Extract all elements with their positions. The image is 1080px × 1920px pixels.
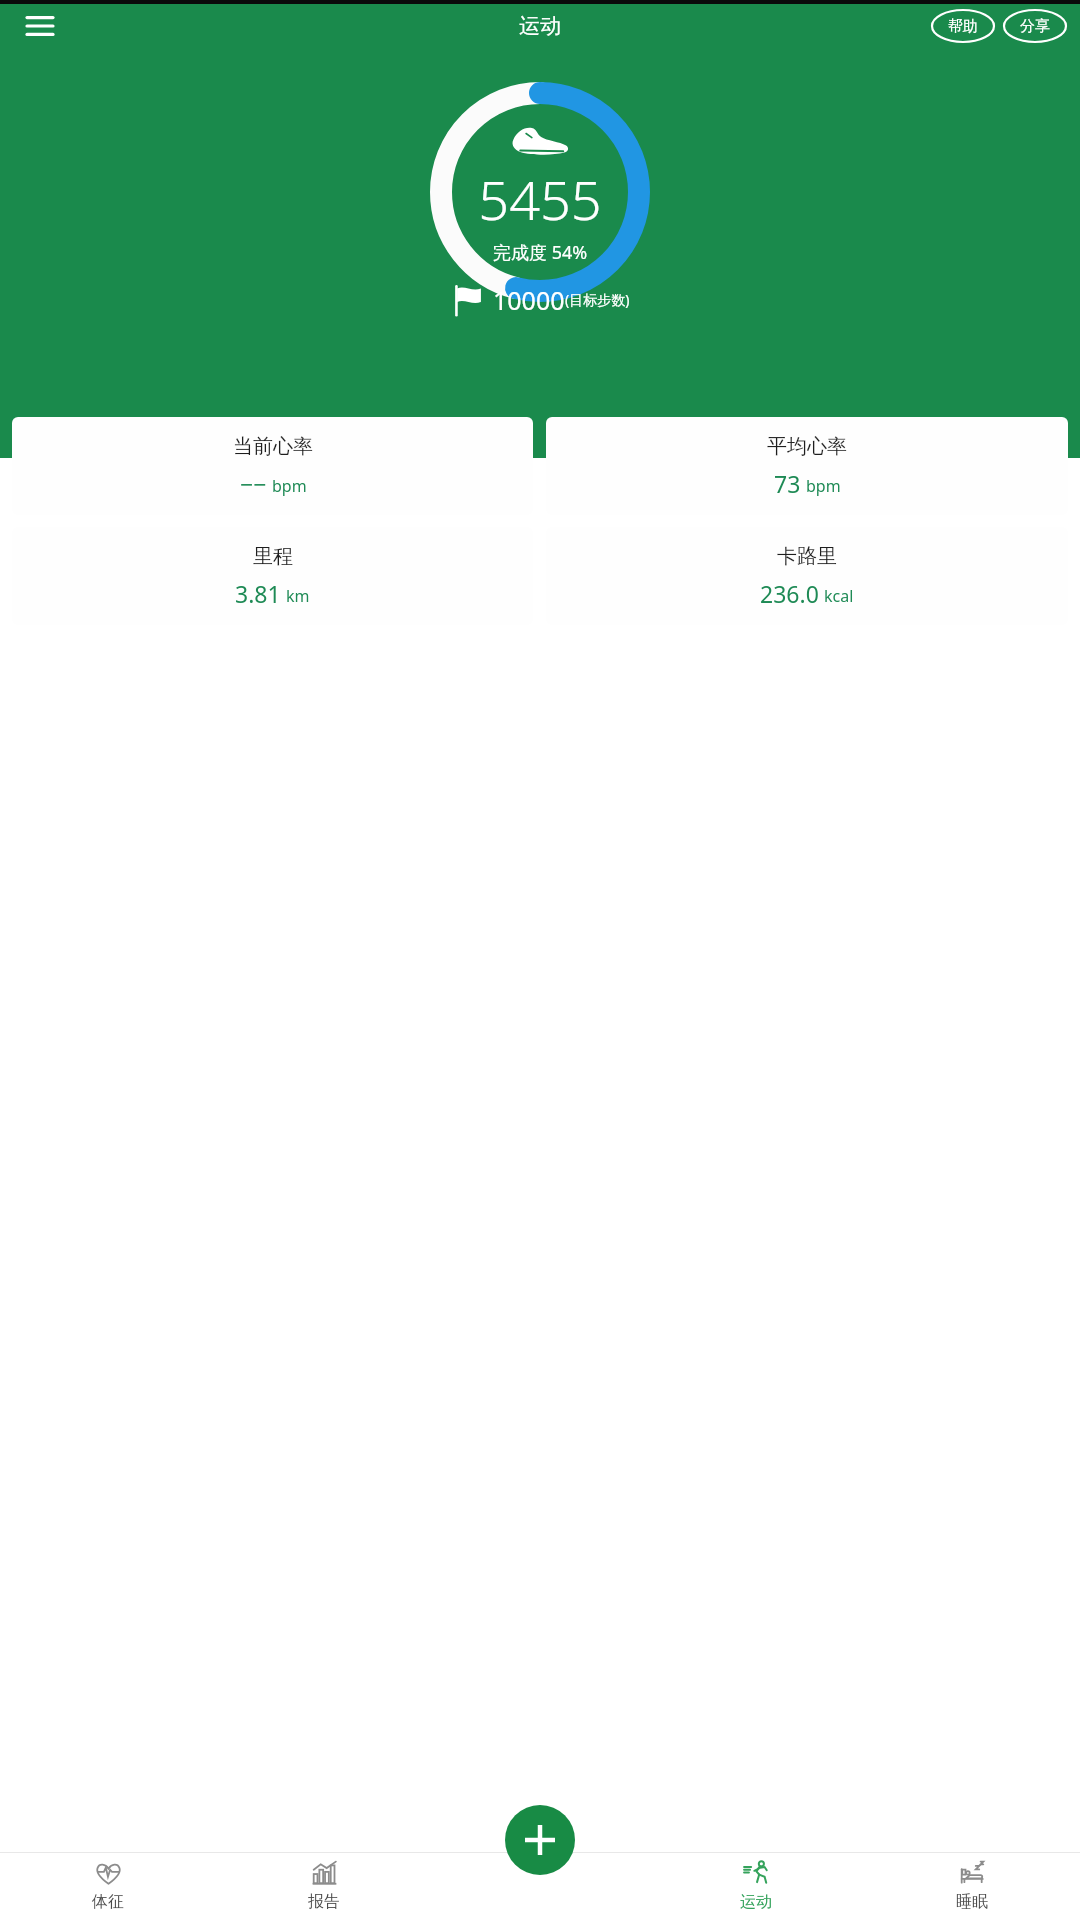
staticText: 睡眠	[956, 1892, 988, 1912]
staticText: bpm	[806, 475, 841, 497]
button[interactable]: 平均心率	[546, 417, 1068, 515]
staticText: 报告	[308, 1892, 340, 1912]
staticText: 体征	[92, 1892, 124, 1912]
button[interactable]: Menu	[14, 0, 66, 52]
staticText: (目标步数)	[565, 290, 630, 309]
button[interactable]: 里程	[12, 527, 533, 625]
staticText: 卡路里	[777, 544, 837, 569]
staticText: 236.0	[760, 578, 819, 609]
staticText: 帮助	[948, 17, 978, 36]
staticText: 10000	[493, 283, 565, 317]
staticText: bpm	[272, 475, 307, 497]
staticText: 3.81	[235, 578, 281, 609]
staticText: 里程	[253, 544, 293, 569]
button[interactable]: 体征	[0, 1852, 216, 1920]
button[interactable]: Add	[505, 1805, 575, 1875]
staticText: −−	[240, 468, 267, 499]
staticText: 运动	[519, 13, 561, 39]
staticText: 分享	[1020, 17, 1050, 36]
staticText: kcal	[824, 585, 854, 607]
button[interactable]: 运动	[648, 1852, 864, 1920]
button[interactable]: 帮助	[932, 10, 994, 42]
staticText: 73	[774, 468, 801, 499]
staticText: 平均心率	[767, 434, 847, 459]
button[interactable]: 10000	[451, 283, 630, 317]
button[interactable]: 当前心率	[12, 417, 533, 515]
staticText: 5455	[478, 162, 602, 236]
button[interactable]: 报告	[216, 1852, 432, 1920]
button[interactable]: 睡眠	[864, 1852, 1080, 1920]
staticText: 当前心率	[233, 434, 313, 459]
staticText: 运动	[740, 1892, 772, 1912]
button[interactable]: 分享	[1004, 10, 1066, 42]
button[interactable]: 卡路里	[546, 527, 1068, 625]
staticText: km	[286, 585, 310, 607]
staticText: 完成度 54%	[493, 240, 588, 265]
